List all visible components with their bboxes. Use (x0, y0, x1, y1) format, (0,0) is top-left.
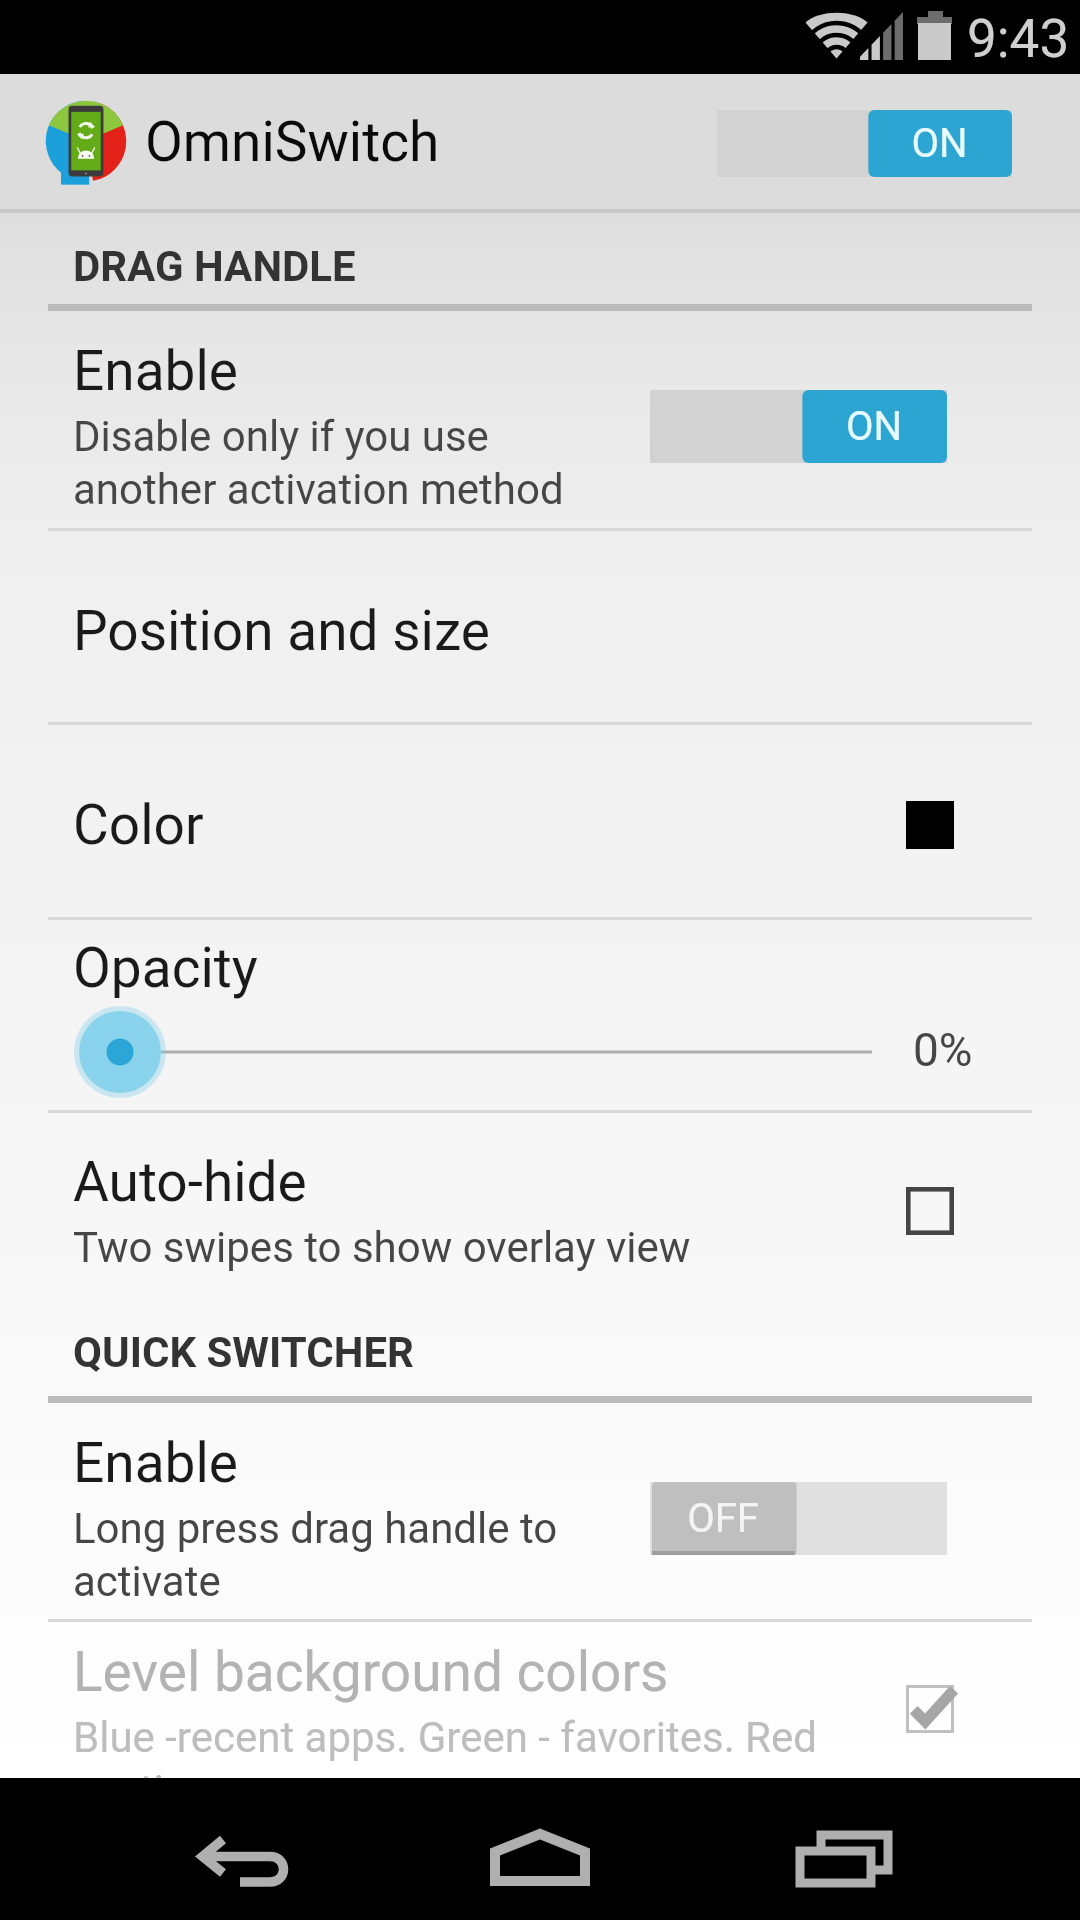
button[interactable]: Back (128, 1778, 352, 1920)
button[interactable]: Checked (906, 1675, 954, 1743)
staticText: Level background colors (73, 1640, 669, 1704)
staticText: Two swipes to show overlay view (73, 1223, 691, 1272)
button[interactable]: Enable (0, 1403, 1080, 1619)
staticText: Enable (73, 1431, 238, 1495)
staticText: Blue -recent apps. Green - favorites. Re… (73, 1713, 817, 1778)
button[interactable]: Level background colors (0, 1622, 1080, 1778)
staticText: DRAG HANDLE (73, 242, 356, 291)
button[interactable]: Auto-hide (0, 1113, 1080, 1295)
staticText: ON (801, 403, 947, 450)
button[interactable]: Position and size (0, 531, 1080, 722)
staticText: Auto-hide (73, 1150, 307, 1214)
staticText: OFF (650, 1495, 796, 1542)
button[interactable]: Home (430, 1778, 650, 1920)
staticText: Color (73, 793, 204, 857)
button[interactable]: Unchecked (906, 1177, 954, 1245)
staticText: 0% (913, 1023, 973, 1077)
staticText: QUICK SWITCHER (73, 1328, 414, 1377)
button[interactable]: Switch on (650, 390, 947, 463)
button[interactable]: Enable (0, 311, 1080, 528)
staticText: OmniSwitch (145, 110, 440, 174)
button[interactable]: Switch on (717, 110, 1012, 177)
button[interactable]: Opacity (0, 920, 1080, 1110)
button[interactable]: Color (0, 725, 1080, 917)
staticText: Enable (73, 339, 238, 403)
staticText: Long press drag handle to activate (73, 1504, 558, 1606)
staticText: ON (867, 120, 1012, 167)
button[interactable]: Recent apps (735, 1778, 955, 1920)
staticText: Position and size (73, 599, 490, 663)
staticText: 9:43 (967, 8, 1070, 70)
staticText: Opacity (73, 936, 258, 1000)
button[interactable]: Switch off (650, 1482, 947, 1555)
staticText: Disable only if you use another activati… (73, 412, 564, 514)
